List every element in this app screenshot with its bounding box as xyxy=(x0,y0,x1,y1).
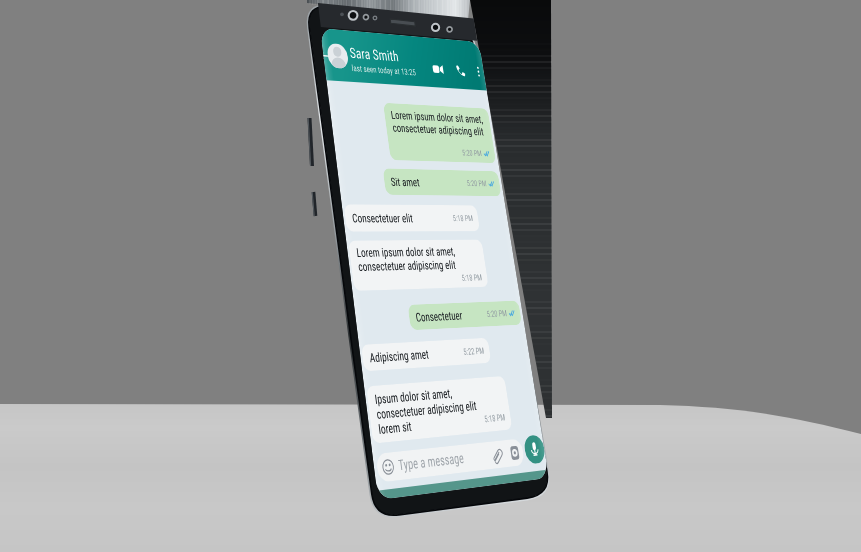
staticText: 5:20 PM xyxy=(278,196,324,212)
button[interactable]: More options xyxy=(332,41,360,70)
staticText: consectetuer adipiscing elit xyxy=(129,154,336,176)
staticText: Lorem ipsum dolor sit amet, xyxy=(129,132,339,154)
staticText: consectetuer adipiscing elit xyxy=(18,383,225,405)
button[interactable]: Lorem ipsum dolor sit amet, xyxy=(4,353,292,432)
button[interactable]: Voice call xyxy=(288,41,320,73)
button[interactable]: Lorem ipsum dolor sit amet, xyxy=(115,123,355,221)
button[interactable]: Sit amet xyxy=(95,235,355,279)
